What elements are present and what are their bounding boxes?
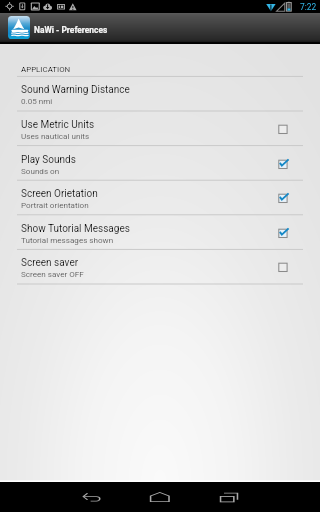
button[interactable]: Sound Warning Distance (0, 76, 320, 111)
staticText: Uses nautical units (21, 131, 90, 140)
staticText: Sound Warning Distance (21, 84, 130, 96)
staticText: Screen saver (21, 257, 79, 269)
button[interactable]: Back (71, 482, 113, 512)
button[interactable]: Recent apps (208, 482, 250, 512)
staticText: Tutorial messages shown (21, 235, 114, 244)
button[interactable]: Play Sounds (0, 146, 320, 181)
staticText: 7:22 (300, 2, 317, 12)
button[interactable]: Show Tutorial Messages (0, 215, 320, 250)
staticText: Screen Orietation (21, 188, 98, 200)
button[interactable]: Off (273, 258, 294, 279)
button[interactable]: On (273, 155, 294, 176)
staticText: Play Sounds (21, 154, 76, 166)
staticText: Screen saver OFF (21, 269, 84, 278)
button[interactable]: Screen saver (0, 249, 320, 284)
staticText: 0.05 nmi (21, 96, 53, 105)
button[interactable]: Home (138, 482, 182, 512)
staticText: NaWi - Preferences (34, 25, 108, 35)
button[interactable]: Screen Orietation (0, 180, 320, 215)
staticText: Use Metric Units (21, 119, 95, 131)
button[interactable]: On (273, 224, 294, 245)
button[interactable]: Off (273, 120, 294, 141)
staticText: Portrait orientation (21, 200, 89, 209)
staticText: Sounds on (21, 166, 60, 175)
button[interactable]: NaWi (8, 16, 30, 39)
staticText: APPLICATION (21, 65, 71, 74)
button[interactable]: On (273, 189, 294, 210)
staticText: Show Tutorial Messages (21, 223, 130, 235)
button[interactable]: Use Metric Units (0, 111, 320, 146)
